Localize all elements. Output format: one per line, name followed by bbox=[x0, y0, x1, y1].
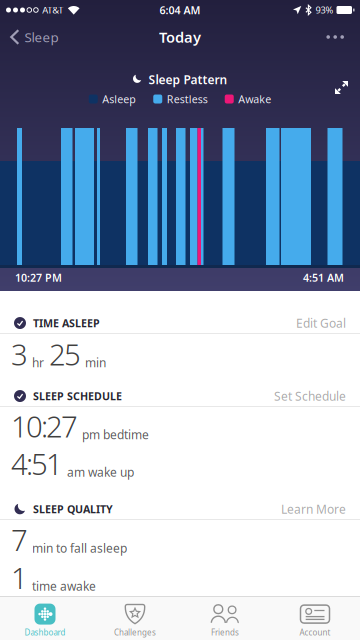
staticText: 4:51 bbox=[11, 444, 63, 483]
button[interactable]: Friends bbox=[180, 599, 270, 638]
staticText: Dashboard bbox=[24, 627, 65, 638]
button[interactable]: Edit Goal bbox=[296, 315, 346, 331]
staticText: 6:04 AM bbox=[159, 3, 200, 17]
staticText: min bbox=[85, 354, 106, 370]
staticText: Asleep bbox=[102, 92, 136, 106]
staticText: time awake bbox=[32, 578, 96, 594]
staticText: 10:27 PM bbox=[15, 270, 62, 285]
button[interactable]: Learn More bbox=[281, 501, 346, 517]
staticText: Restless bbox=[167, 92, 208, 106]
staticText: Set Schedule bbox=[274, 388, 346, 404]
staticText: 1 bbox=[11, 558, 28, 597]
staticText: SLEEP SCHEDULE bbox=[33, 389, 122, 403]
button[interactable]: Dashboard bbox=[0, 599, 90, 638]
staticText: 25 bbox=[49, 334, 81, 373]
staticText: hr bbox=[32, 354, 44, 370]
staticText: AT&T bbox=[42, 4, 63, 16]
staticText: Friends bbox=[211, 627, 239, 638]
button[interactable]: Expand chart bbox=[329, 75, 354, 100]
button[interactable]: Set Schedule bbox=[274, 388, 346, 404]
staticText: Sleep Pattern bbox=[148, 71, 227, 87]
staticText: 4:51 AM bbox=[303, 270, 344, 285]
staticText: 3 bbox=[11, 334, 28, 373]
staticText: 10:27 bbox=[11, 406, 78, 445]
staticText: TIME ASLEEP bbox=[33, 316, 100, 330]
staticText: SLEEP QUALITY bbox=[33, 502, 113, 516]
button[interactable]: Sleep bbox=[0, 28, 58, 46]
button[interactable]: Account bbox=[270, 599, 360, 638]
staticText: 93% bbox=[315, 4, 333, 16]
staticText: Learn More bbox=[281, 501, 346, 517]
button[interactable]: Challenges bbox=[90, 599, 180, 638]
button[interactable]: More bbox=[326, 27, 360, 47]
staticText: 7 bbox=[11, 520, 28, 559]
staticText: am wake up bbox=[67, 464, 134, 480]
staticText: Challenges bbox=[114, 627, 156, 638]
staticText: Sleep bbox=[24, 28, 58, 46]
staticText: Awake bbox=[238, 92, 271, 106]
staticText: Today bbox=[159, 27, 201, 47]
staticText: min to fall asleep bbox=[32, 540, 127, 556]
staticText: Account bbox=[299, 627, 330, 638]
staticText: Edit Goal bbox=[296, 315, 346, 331]
staticText: pm bedtime bbox=[82, 426, 149, 442]
